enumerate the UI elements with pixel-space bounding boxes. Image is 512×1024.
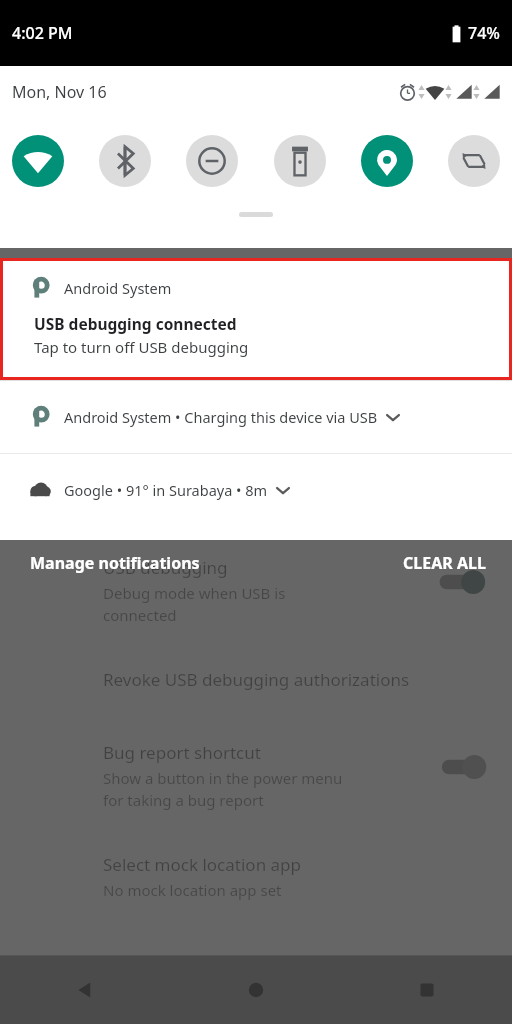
staticText: 74%	[468, 22, 500, 44]
staticText: USB debugging connected	[34, 313, 237, 334]
button[interactable]: CLEAR ALL	[403, 546, 486, 580]
staticText: Revoke USB debugging authorizations	[103, 668, 410, 691]
staticText: CLEAR ALL	[403, 552, 486, 574]
staticText: Android System	[64, 278, 172, 298]
staticText: USB debugging	[103, 556, 228, 579]
button[interactable]: Bluetooth	[99, 135, 151, 187]
staticText: Tap to turn off USB debugging	[34, 337, 249, 357]
staticText: Manage notifications	[30, 552, 200, 574]
staticText: Android System • Charging this device vi…	[64, 407, 378, 427]
button[interactable]	[432, 556, 492, 608]
staticText: No mock location app set	[103, 880, 282, 900]
button[interactable]: Do not disturb	[186, 135, 238, 187]
button[interactable]: Wi-Fi	[12, 135, 64, 187]
button[interactable]: Android System • Charging this device vi…	[0, 381, 512, 453]
button[interactable]	[432, 741, 492, 793]
button[interactable]: Flashlight	[274, 135, 326, 187]
button[interactable]: Location	[361, 135, 413, 187]
staticText: Show a button in the power menu for taki…	[103, 768, 343, 811]
button[interactable]: Android System	[3, 261, 509, 377]
staticText: Select mock location app	[103, 853, 301, 876]
staticText: Mon, Nov 16	[12, 81, 107, 103]
staticText: Debug mode when USB is connected	[103, 583, 286, 626]
staticText: Bug report shortcut	[103, 741, 261, 764]
staticText: Google • 91° in Surabaya • 8m	[64, 480, 268, 500]
button[interactable]: Auto-rotate	[448, 135, 500, 187]
button[interactable]: Expand quick settings	[239, 212, 273, 217]
button[interactable]: Google • 91° in Surabaya • 8m	[0, 454, 512, 526]
button[interactable]: Manage notifications	[30, 546, 200, 580]
staticText: 4:02 PM	[12, 22, 73, 44]
